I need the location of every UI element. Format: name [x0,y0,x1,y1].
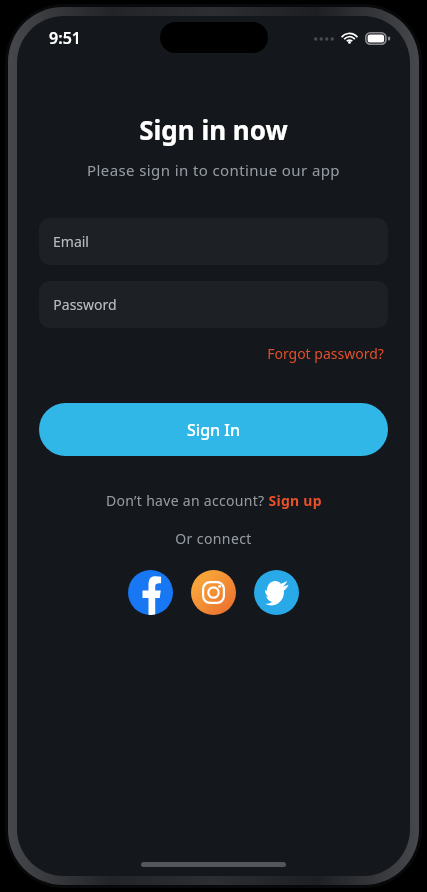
staticText: Password [53,295,117,314]
button[interactable]: Password [39,281,388,328]
staticText: Email [53,232,89,251]
button[interactable]: Don’t have an account? Sign up [100,488,328,513]
staticText: Sign In [187,419,240,441]
button[interactable]: Sign in with Facebook [128,570,173,615]
button[interactable]: Email [39,218,388,265]
staticText: 9:51 [49,27,81,49]
button[interactable]: Sign in with Twitter [254,570,299,615]
button[interactable]: Sign In [39,403,388,456]
staticText: Sign in now [139,112,288,147]
button[interactable]: Forgot password? [263,340,388,367]
staticText: Don’t have an account? Sign up [106,491,322,510]
staticText: Forgot password? [267,344,384,363]
staticText: Please sign in to continue our app [87,160,340,180]
button[interactable]: Sign in with Instagram [191,570,236,615]
staticText: Or connect [175,529,252,548]
